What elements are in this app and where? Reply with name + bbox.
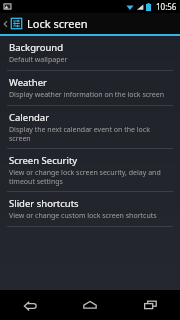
button[interactable]: Home	[60, 290, 120, 320]
button[interactable]: Recent apps	[120, 290, 180, 320]
staticText: View or change custom lock screen shortc…	[9, 211, 157, 221]
staticText: Screen Security	[9, 154, 78, 167]
staticText: Default wallpaper	[9, 55, 68, 65]
staticText: Display the next calendar event on the l…	[9, 125, 171, 143]
staticText: Lock screen	[27, 16, 88, 31]
staticText: Display weather information on the lock …	[9, 90, 165, 100]
other: Navigate up	[3, 19, 8, 29]
staticText: Background	[9, 41, 64, 54]
staticText: Weather	[9, 76, 47, 89]
staticText: 10:56	[156, 1, 177, 12]
staticText: View or change lock screen security, del…	[9, 168, 171, 186]
button[interactable]: Slider shortcuts	[0, 192, 180, 226]
button[interactable]: Calendar	[0, 106, 180, 148]
button[interactable]: Back	[0, 290, 60, 320]
button[interactable]: Weather	[0, 71, 180, 105]
button[interactable]: Background	[0, 36, 180, 70]
button[interactable]: Screen Security	[0, 149, 180, 191]
staticText: Slider shortcuts	[9, 197, 79, 210]
button[interactable]: Navigate up	[0, 13, 180, 34]
staticText: Calendar	[9, 111, 50, 124]
